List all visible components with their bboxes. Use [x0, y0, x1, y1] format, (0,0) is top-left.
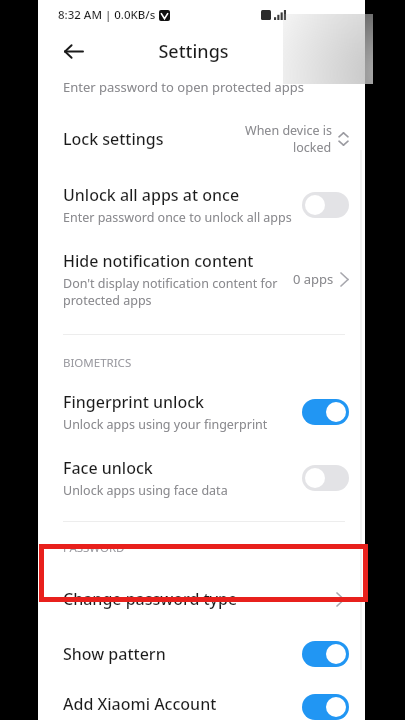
button[interactable]: Toggle on — [302, 694, 349, 720]
button[interactable]: Toggle on — [302, 399, 349, 425]
staticText: Enter password to open protected apps — [63, 78, 305, 96]
staticText: Don't display notification content for p… — [63, 275, 278, 308]
button[interactable]: Toggle off — [302, 465, 349, 491]
staticText: Enter password once to unlock all apps — [63, 209, 292, 226]
staticText: Add Xiaomi Account — [63, 693, 217, 715]
button[interactable]: Back — [54, 32, 92, 70]
button[interactable]: Unlock all apps at once — [38, 184, 365, 226]
staticText: 0 apps — [293, 270, 334, 288]
button[interactable]: Show pattern — [38, 641, 365, 667]
staticText: Unlock all apps at once — [63, 184, 240, 206]
staticText: Unlock apps using your fingerprint — [63, 416, 268, 433]
staticText: Fingerprint unlock — [63, 391, 204, 413]
button[interactable]: Change password type — [38, 570, 365, 627]
staticText: When device is — [245, 122, 332, 139]
button[interactable]: Face unlock — [38, 457, 365, 499]
staticText: Show pattern — [63, 643, 166, 665]
staticText: Settings — [158, 39, 229, 64]
staticText: Lock settings — [63, 128, 164, 150]
staticText: PASSWORD — [63, 540, 125, 556]
button[interactable]: Add Xiaomi Account — [38, 693, 365, 720]
staticText: Unlock apps using face data — [63, 482, 228, 499]
button[interactable]: Toggle on — [302, 641, 349, 667]
staticText: BIOMETRICS — [63, 355, 132, 371]
staticText: 8:32 AM | 0.0KB/s — [58, 7, 156, 23]
button[interactable]: Hide notification content — [38, 250, 365, 308]
staticText: Face unlock — [63, 457, 153, 479]
button[interactable]: Lock settings — [38, 120, 365, 158]
staticText: Hide notification content — [63, 250, 254, 272]
button[interactable]: Toggle off — [302, 192, 349, 218]
staticText: Change password type — [63, 588, 238, 610]
staticText: locked — [293, 139, 332, 156]
button[interactable]: Fingerprint unlock — [38, 391, 365, 433]
